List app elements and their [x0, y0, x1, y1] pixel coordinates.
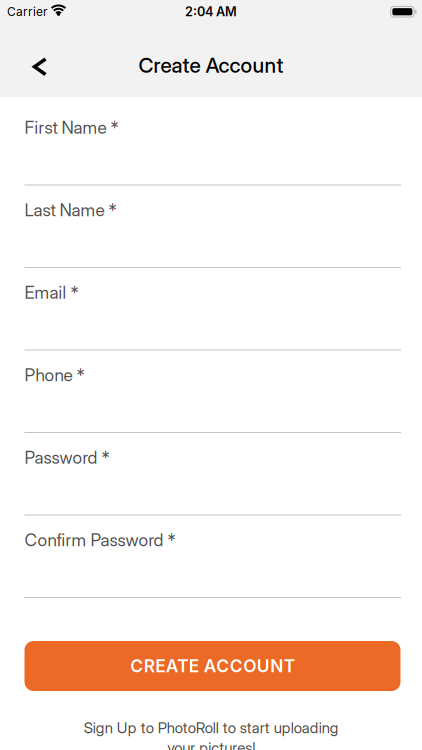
staticText: Confirm Password * — [24, 530, 175, 550]
staticText: Create Account — [138, 53, 283, 77]
staticText: Carrier — [7, 5, 48, 19]
staticText: Email * — [24, 282, 78, 303]
staticText: CREATE ACCOUNT — [130, 656, 295, 676]
button[interactable]: CREATE ACCOUNT — [24, 641, 400, 691]
staticText: Password * — [24, 447, 109, 468]
staticText: 2:04 AM — [185, 4, 237, 19]
staticText: Sign Up to PhotoRoll to start uploading … — [83, 719, 338, 750]
staticText: Phone * — [24, 365, 84, 385]
staticText: First Name * — [24, 117, 118, 138]
staticText: Last Name * — [24, 200, 116, 220]
button[interactable]: Back — [0, 51, 59, 82]
